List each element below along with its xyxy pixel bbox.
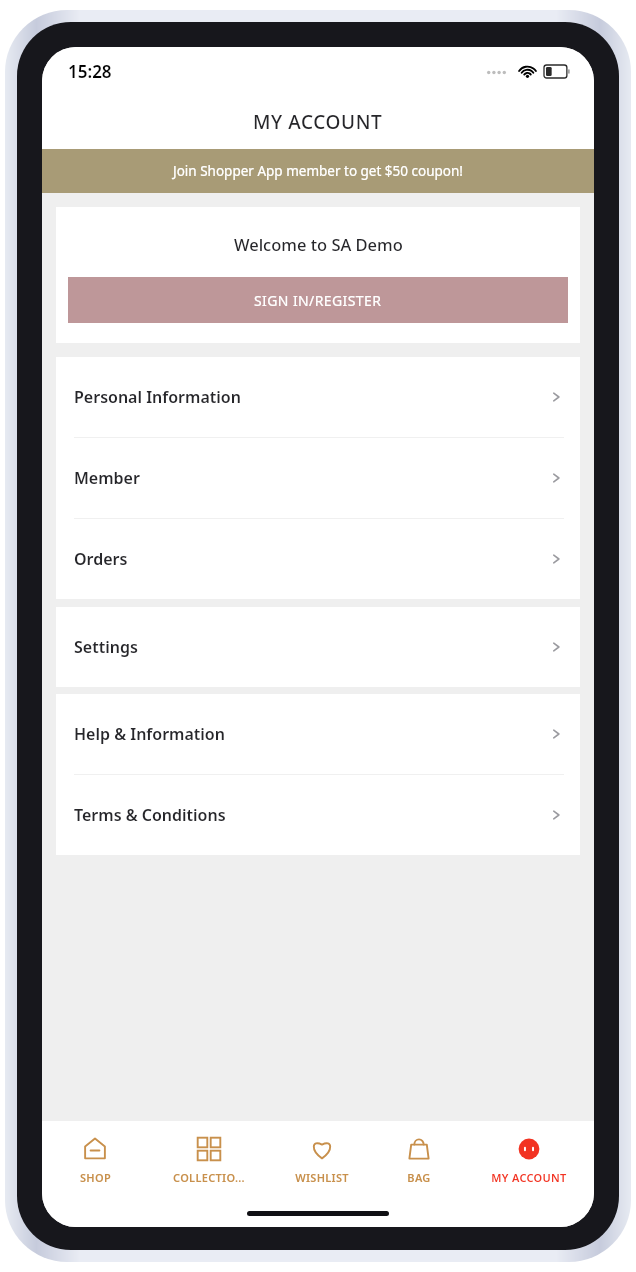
button[interactable]: Orders	[56, 519, 580, 599]
button[interactable]: Terms & Conditions	[56, 775, 580, 855]
staticText: MY ACCOUNT	[253, 109, 383, 135]
button[interactable]: Join Shopper App member to get $50 coupo…	[42, 149, 594, 193]
button[interactable]: Help & Information	[56, 694, 580, 774]
staticText: Help & Information	[74, 723, 548, 745]
button[interactable]: Personal Information	[56, 357, 580, 437]
button[interactable]: WISHLIST	[269, 1121, 374, 1199]
staticText: COLLECTIO...	[173, 1170, 245, 1185]
staticText: BAG	[407, 1170, 431, 1185]
staticText: SIGN IN/REGISTER	[254, 291, 382, 310]
staticText: SHOP	[80, 1170, 111, 1185]
staticText: Welcome to SA Demo	[234, 233, 403, 255]
staticText: MY ACCOUNT	[491, 1170, 567, 1185]
button[interactable]: COLLECTIO...	[148, 1121, 269, 1199]
staticText: WISHLIST	[295, 1170, 349, 1185]
button[interactable]: BAG	[374, 1121, 463, 1199]
staticText: Terms & Conditions	[74, 804, 548, 826]
staticText: Settings	[74, 636, 548, 658]
button[interactable]: Member	[56, 438, 580, 518]
button[interactable]: SHOP	[42, 1121, 148, 1199]
staticText: Member	[74, 467, 548, 489]
staticText: Orders	[74, 548, 548, 570]
staticText: Personal Information	[74, 386, 548, 408]
button[interactable]: MY ACCOUNT	[463, 1121, 594, 1199]
staticText: 15:28	[68, 60, 112, 83]
staticText: Join Shopper App member to get $50 coupo…	[173, 162, 463, 180]
button[interactable]: SIGN IN/REGISTER	[68, 277, 568, 323]
button[interactable]: Settings	[56, 607, 580, 687]
